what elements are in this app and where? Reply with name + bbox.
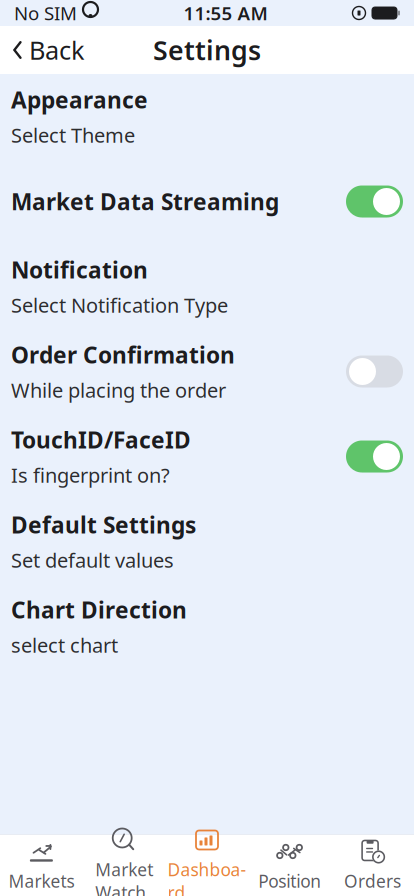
- staticText: No SIM: [14, 1, 77, 25]
- staticText: Is fingerprint on?: [11, 462, 170, 488]
- staticText: TouchID/FaceID: [11, 425, 191, 455]
- button[interactable]: Orders: [331, 835, 414, 896]
- button[interactable]: Notification: [0, 244, 414, 329]
- button[interactable]: TouchID/FaceID: [0, 414, 414, 499]
- button[interactable]: Chart Direction: [0, 584, 414, 669]
- staticText: Orders: [344, 869, 401, 892]
- staticText: While placing the order: [11, 377, 226, 403]
- staticText: Select Theme: [11, 122, 135, 148]
- staticText: Settings: [153, 32, 261, 68]
- staticText: Default Settings: [11, 510, 196, 540]
- staticText: Back: [29, 33, 85, 67]
- staticText: Market Data Streaming: [11, 186, 279, 216]
- staticText: Market Watch: [95, 858, 153, 896]
- button[interactable]: Markets: [0, 835, 83, 896]
- button[interactable]: Order Confirmation: [0, 329, 414, 414]
- button[interactable]: Appearance: [0, 74, 414, 159]
- button[interactable]: Position: [248, 835, 331, 896]
- button[interactable]: Market Watch: [83, 835, 166, 896]
- staticText: 11:55 AM: [183, 1, 267, 25]
- staticText: Dashboard: [167, 858, 246, 896]
- button[interactable]: Market Data Streaming: [0, 159, 414, 244]
- staticText: Notification: [11, 255, 148, 285]
- staticText: Position: [258, 869, 321, 892]
- button[interactable]: Dashboard: [166, 835, 248, 896]
- staticText: Appearance: [11, 85, 148, 115]
- staticText: Chart Direction: [11, 595, 187, 625]
- staticText: select chart: [11, 632, 118, 658]
- staticText: Order Confirmation: [11, 340, 235, 370]
- staticText: Set default values: [11, 547, 174, 573]
- staticText: Select Notification Type: [11, 292, 228, 318]
- button[interactable]: Back: [0, 26, 99, 74]
- staticText: Markets: [8, 869, 74, 892]
- button[interactable]: Default Settings: [0, 499, 414, 584]
